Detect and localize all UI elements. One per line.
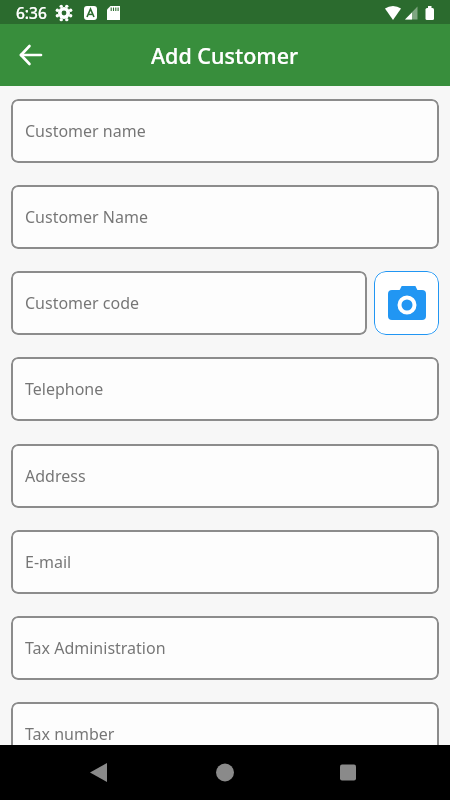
staticText: Customer Name — [25, 206, 148, 228]
button[interactable] — [374, 271, 439, 335]
button[interactable]: Tax Administration — [11, 616, 439, 680]
button[interactable] — [300, 745, 450, 800]
staticText: Add Customer — [151, 41, 299, 70]
staticText: Tax number — [25, 723, 115, 745]
button[interactable]: Tax number — [11, 702, 439, 745]
staticText: Tax Administration — [25, 637, 166, 659]
button[interactable]: Customer name — [11, 99, 439, 163]
staticText: E-mail — [25, 551, 72, 573]
button[interactable]: E-mail — [11, 530, 439, 594]
staticText: Address — [25, 465, 86, 487]
button[interactable] — [150, 745, 300, 800]
button[interactable]: Customer code — [11, 271, 367, 335]
button[interactable]: Customer Name — [11, 185, 439, 249]
button[interactable]: Telephone — [11, 357, 439, 421]
button[interactable] — [8, 32, 54, 78]
button[interactable] — [0, 745, 150, 800]
staticText: Customer name — [25, 120, 146, 142]
button[interactable]: Address — [11, 444, 439, 508]
staticText: Customer code — [25, 292, 140, 314]
staticText: 6:36 — [16, 2, 47, 23]
staticText: Telephone — [25, 378, 104, 400]
